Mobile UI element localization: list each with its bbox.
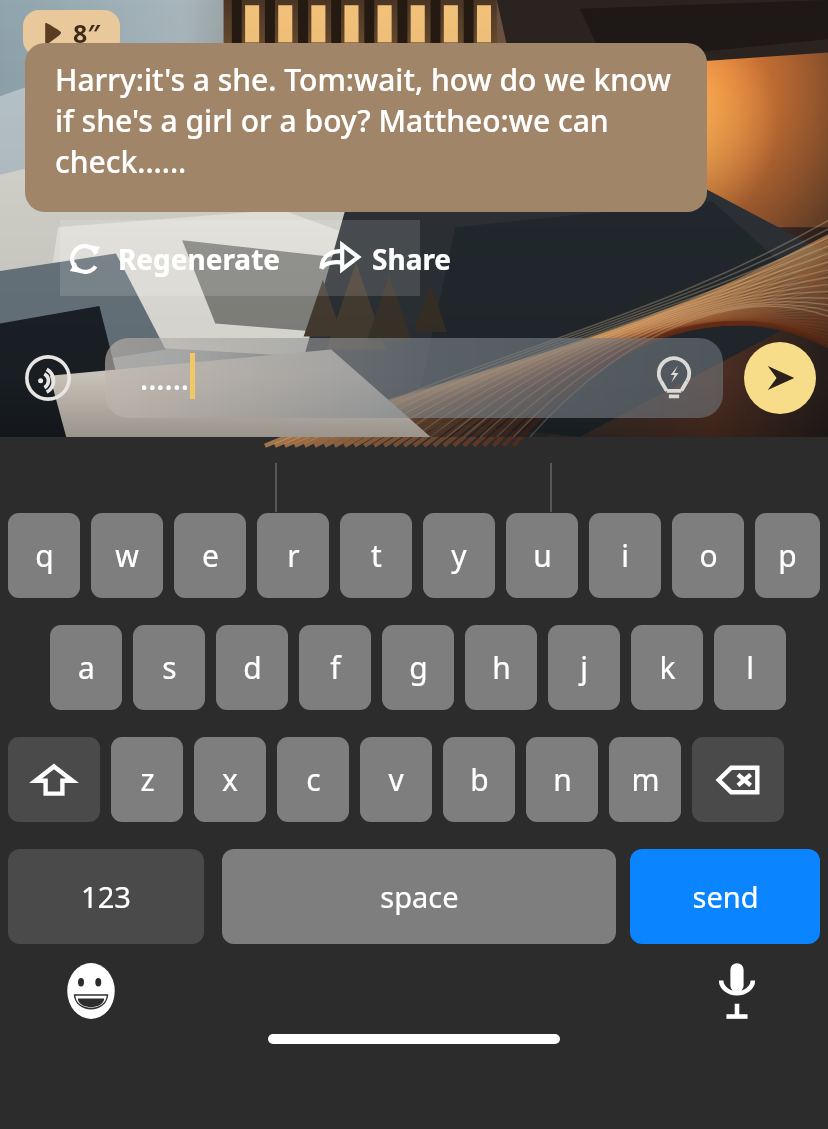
- button[interactable]: x: [194, 737, 266, 822]
- button[interactable]: Harry:it's a she. Tom:wait, how do we kn…: [25, 43, 707, 212]
- staticText: 123: [81, 877, 131, 916]
- button[interactable]: Shift: [8, 737, 100, 822]
- staticText: d: [243, 647, 262, 688]
- button[interactable]: i: [589, 513, 661, 598]
- staticText: space: [380, 877, 459, 916]
- staticText: Regenerate: [118, 240, 281, 278]
- staticText: s: [162, 647, 177, 688]
- button[interactable]: p: [755, 513, 820, 598]
- staticText: h: [492, 647, 511, 688]
- button[interactable]: Backspace: [692, 737, 784, 822]
- staticText: Harry:it's a she. Tom:wait, how do we kn…: [55, 59, 683, 182]
- button[interactable]: Voice playback: [24, 354, 72, 402]
- staticText: l: [746, 647, 754, 688]
- staticText: n: [553, 759, 572, 800]
- button[interactable]: z: [111, 737, 183, 822]
- button[interactable]: Send: [744, 342, 816, 414]
- staticText: r: [287, 535, 300, 576]
- button[interactable]: Voice input: [708, 962, 766, 1020]
- staticText: u: [533, 535, 552, 576]
- button[interactable]: s: [133, 625, 205, 710]
- button[interactable]: e: [174, 513, 246, 598]
- button[interactable]: space: [222, 849, 616, 944]
- staticText: a: [78, 647, 95, 688]
- button[interactable]: d: [216, 625, 288, 710]
- staticText: z: [140, 759, 155, 800]
- staticText: f: [330, 647, 341, 688]
- button[interactable]: l: [714, 625, 786, 710]
- button[interactable]: c: [277, 737, 349, 822]
- staticText: p: [778, 535, 797, 576]
- staticText: w: [115, 535, 139, 576]
- staticText: y: [451, 535, 467, 576]
- staticText: v: [388, 759, 404, 800]
- staticText: x: [222, 759, 238, 800]
- button[interactable]: q: [8, 513, 80, 598]
- button[interactable]: v: [360, 737, 432, 822]
- staticText: j: [580, 647, 588, 688]
- staticText: i: [621, 535, 629, 576]
- button[interactable]: f: [299, 625, 371, 710]
- staticText: m: [631, 759, 660, 800]
- button[interactable]: ......: [105, 338, 723, 418]
- button[interactable]: n: [526, 737, 598, 822]
- button[interactable]: o: [672, 513, 744, 598]
- staticText: c: [306, 759, 321, 800]
- staticText: ......: [140, 358, 189, 399]
- button[interactable]: j: [548, 625, 620, 710]
- button[interactable]: g: [382, 625, 454, 710]
- button[interactable]: h: [465, 625, 537, 710]
- button[interactable]: k: [631, 625, 703, 710]
- staticText: t: [371, 535, 382, 576]
- staticText: Share: [372, 240, 452, 278]
- button[interactable]: u: [506, 513, 578, 598]
- staticText: b: [470, 759, 489, 800]
- button[interactable]: r: [257, 513, 329, 598]
- button[interactable]: 123: [8, 849, 204, 944]
- button[interactable]: b: [443, 737, 515, 822]
- staticText: o: [699, 535, 718, 576]
- staticText: e: [202, 535, 219, 576]
- staticText: send: [692, 877, 759, 916]
- button[interactable]: Suggestions: [647, 351, 701, 405]
- button[interactable]: Emoji: [62, 962, 120, 1020]
- button[interactable]: t: [340, 513, 412, 598]
- button[interactable]: send: [630, 849, 820, 944]
- button[interactable]: y: [423, 513, 495, 598]
- button[interactable]: w: [91, 513, 163, 598]
- staticText: 8″: [73, 16, 101, 50]
- button[interactable]: Regenerate: [62, 234, 285, 284]
- button[interactable]: Share: [315, 234, 456, 284]
- staticText: q: [35, 535, 54, 576]
- button[interactable]: m: [609, 737, 681, 822]
- button[interactable]: a: [50, 625, 122, 710]
- button[interactable]: 8″: [23, 10, 120, 56]
- staticText: k: [659, 647, 676, 688]
- staticText: g: [409, 647, 428, 688]
